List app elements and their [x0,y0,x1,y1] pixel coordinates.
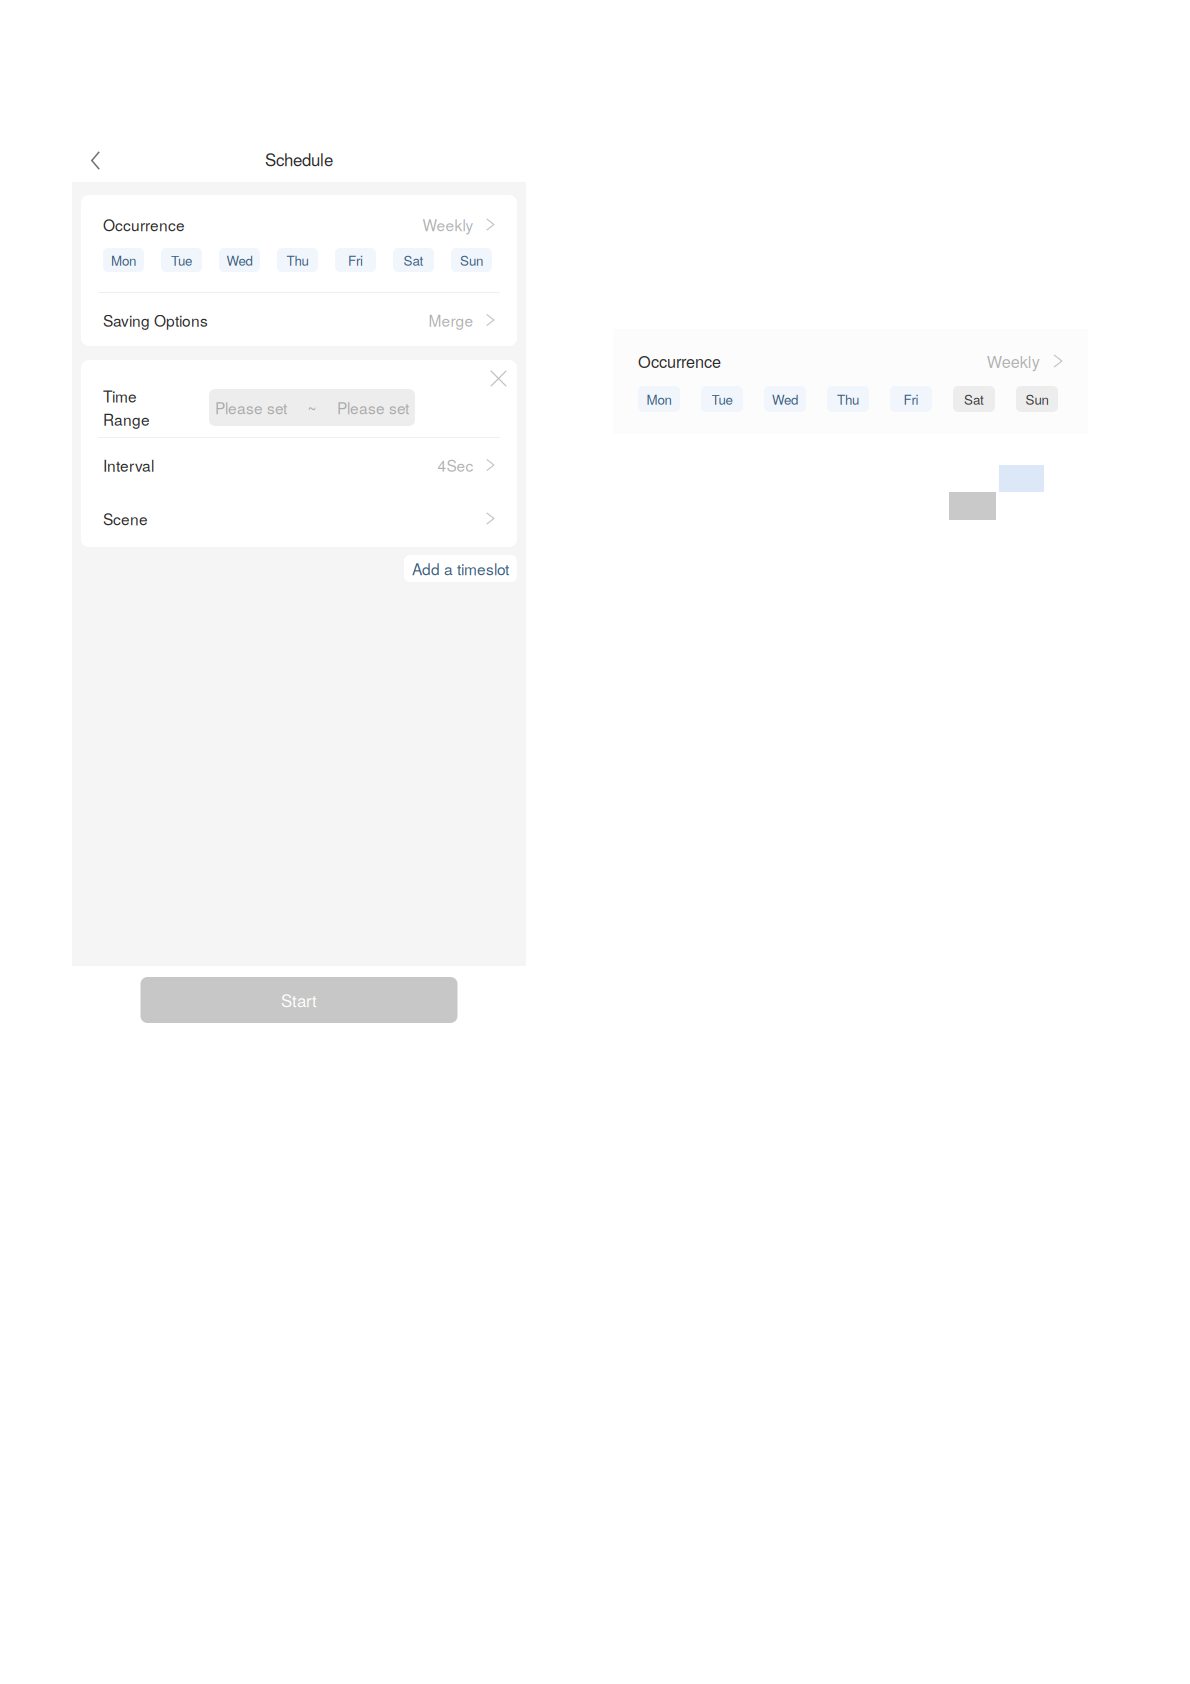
staticText: Start [281,988,317,1012]
staticText: Weekly [423,213,474,235]
button[interactable]: Mon [103,248,144,272]
staticText: Tue [711,389,732,409]
staticText: Occurrence [638,349,721,373]
button[interactable]: Sat [953,386,995,412]
staticText: Weekly [987,349,1040,373]
staticText: Mon [646,389,671,409]
staticText: Wed [772,389,798,409]
button[interactable]: Occurrence [81,203,517,246]
button[interactable]: Thu [827,386,869,412]
staticText: Wed [226,250,252,270]
staticText: Fri [348,250,363,270]
staticText: Occurrence [103,213,185,235]
staticText: Range [103,408,150,430]
button[interactable]: Sat [393,248,434,272]
staticText: Interval [103,454,154,476]
button[interactable]: Wed [764,386,806,412]
button[interactable]: Tue [701,386,743,412]
button[interactable]: Sun [1016,386,1058,412]
button[interactable]: Tue [161,248,202,272]
button[interactable]: Thu [277,248,318,272]
button[interactable]: Saving Options [81,293,517,347]
staticText: Saving Options [103,309,208,331]
staticText: Add a timeslot [412,557,509,579]
button[interactable]: Scene [81,492,517,545]
button[interactable]: Occurrence [613,338,1088,384]
button[interactable]: Wed [219,248,260,272]
staticText: Sat [403,250,423,270]
staticText: Merge [429,309,474,331]
button[interactable]: Fri [335,248,376,272]
staticText: Please set [215,396,287,418]
staticText: Please set [337,396,409,418]
staticText: Tue [171,250,192,270]
button[interactable]: Please set [209,389,415,426]
button[interactable]: Start [140,977,457,1023]
staticText: Fri [903,389,918,409]
staticText: Scene [103,507,148,529]
button[interactable]: Back [83,143,108,178]
button[interactable]: Sun [451,248,492,272]
button[interactable]: Fri [890,386,932,412]
button[interactable]: Add a timeslot [404,555,517,582]
button[interactable]: Interval [81,438,517,492]
staticText: Time [103,385,137,407]
staticText: Thu [286,250,308,270]
staticText: 4Sec [438,454,474,476]
staticText: Sat [964,389,984,409]
button[interactable]: Mon [638,386,680,412]
staticText: Sun [1025,389,1048,409]
staticText: ~ [307,396,316,418]
staticText: Sun [460,250,483,270]
staticText: Thu [837,389,859,409]
staticText: Mon [111,250,136,270]
staticText: Schedule [265,147,333,171]
button[interactable]: Remove timeslot [486,366,511,391]
